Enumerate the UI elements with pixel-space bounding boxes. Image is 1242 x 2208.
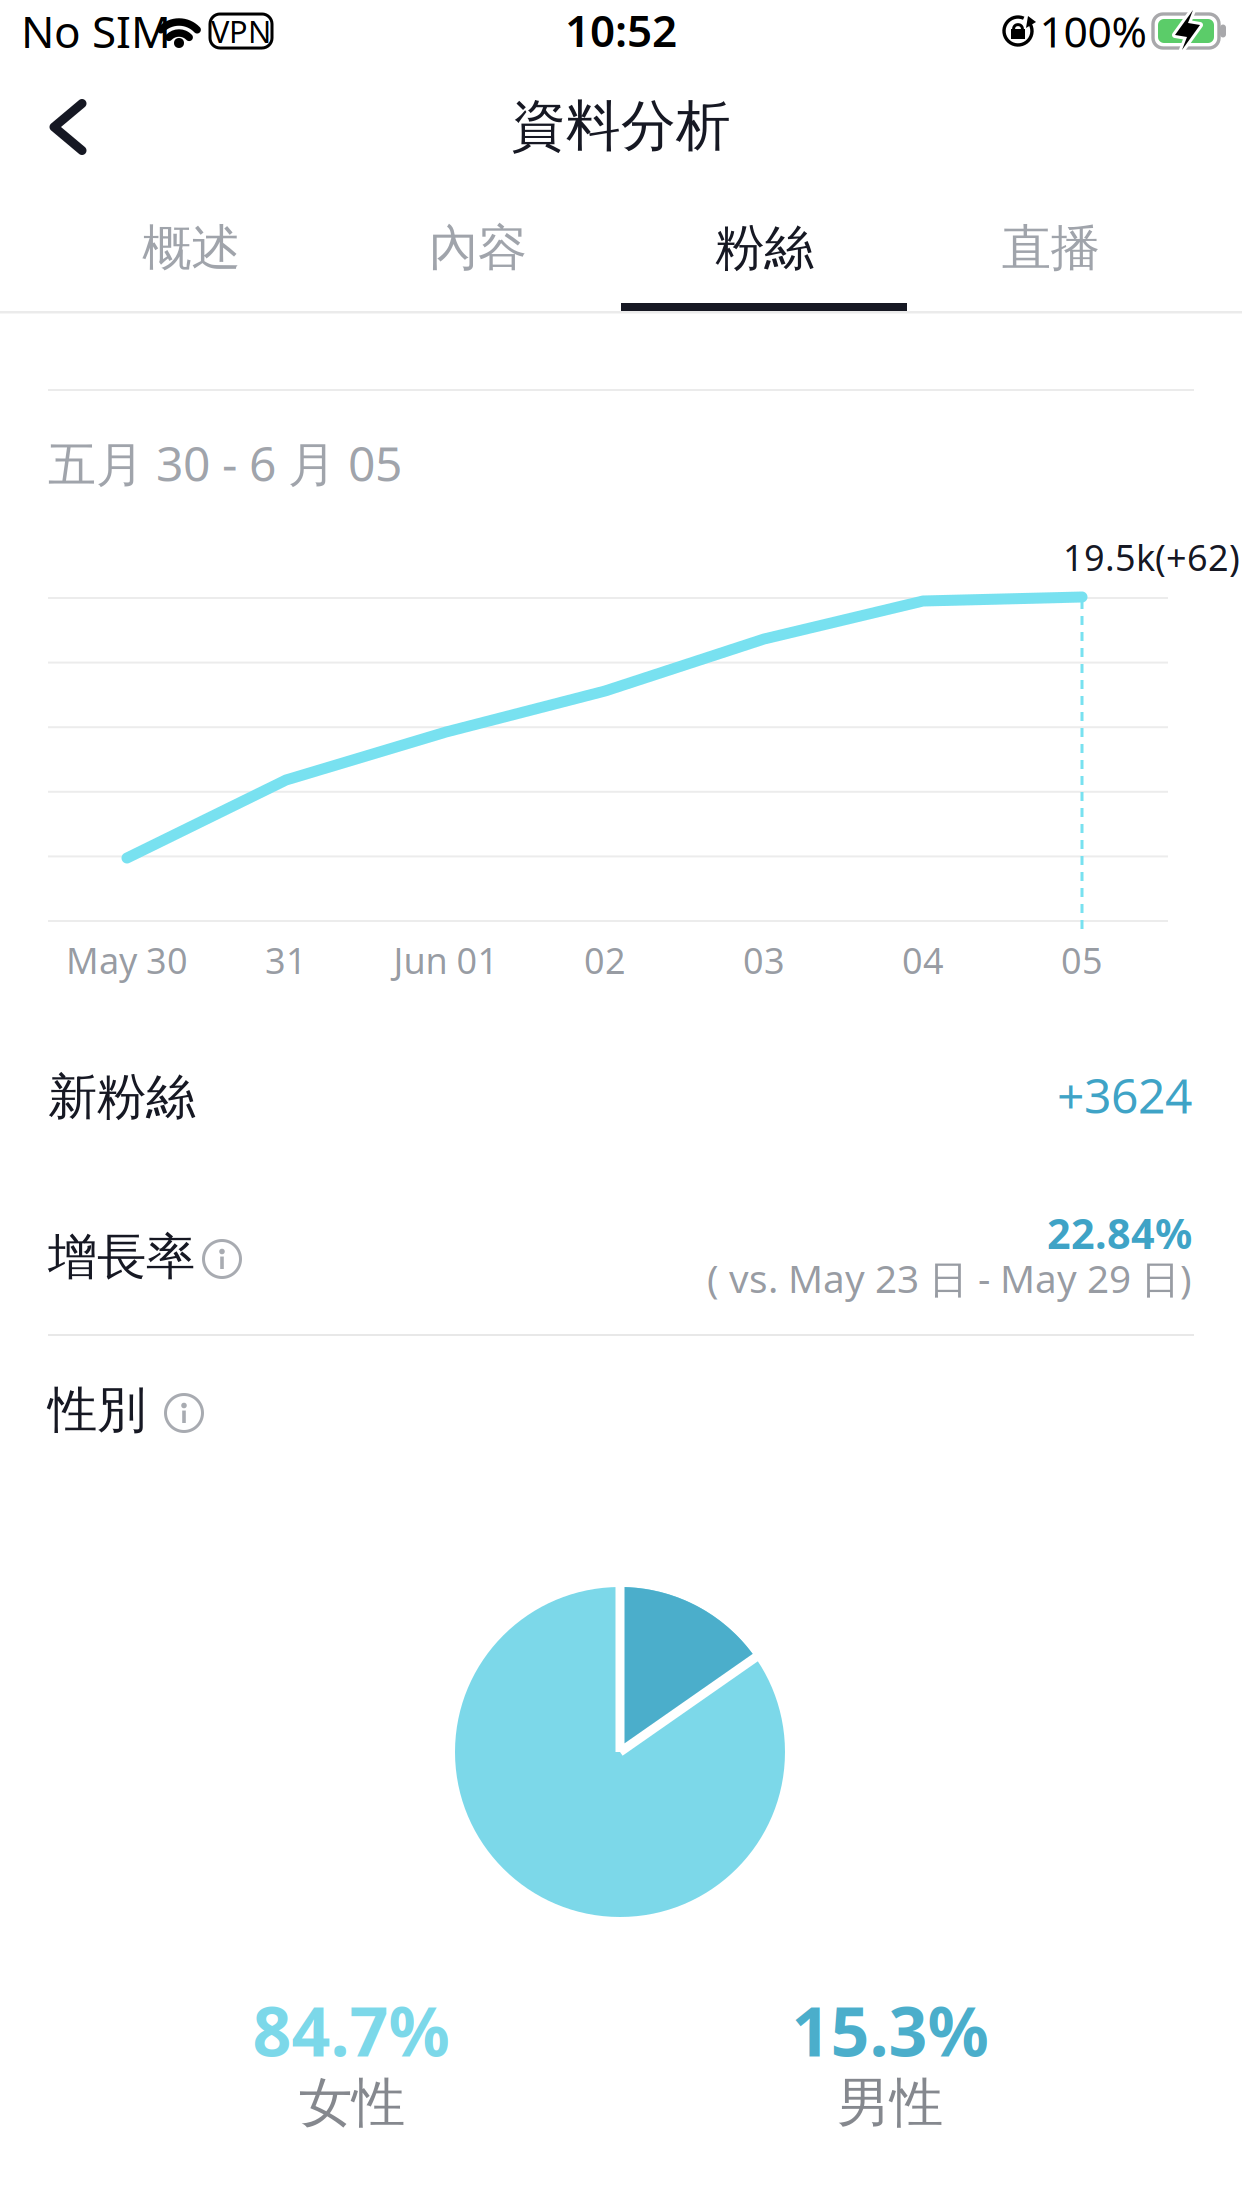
staticText: 女性: [299, 2070, 405, 2136]
staticText: No SIM: [21, 2, 171, 60]
button[interactable]: About gender: [162, 1391, 206, 1435]
staticText: 31: [265, 936, 307, 984]
button[interactable]: 粉絲: [621, 193, 907, 303]
staticText: 直播: [1002, 218, 1100, 278]
button[interactable]: 概述: [48, 193, 334, 303]
staticText: 五月 30 - 6 月 05: [48, 431, 402, 495]
button[interactable]: 內容: [335, 193, 621, 303]
staticText: 15.3%: [791, 1985, 988, 2075]
staticText: 22.84%: [1047, 1206, 1192, 1260]
staticText: 新粉絲: [48, 1067, 195, 1127]
staticText: 資料分析: [511, 92, 731, 159]
staticText: 100%: [1039, 3, 1146, 59]
staticText: ( vs. May 23 日 - May 29 日): [707, 1252, 1192, 1304]
staticText: 10:52: [565, 1, 677, 59]
staticText: 03: [743, 936, 785, 984]
button[interactable]: About growth rate: [200, 1237, 244, 1281]
staticText: 內容: [429, 218, 527, 278]
staticText: 19.5k(+62): [1063, 533, 1240, 581]
button[interactable]: 直播: [908, 193, 1194, 303]
staticText: Jun 01: [393, 936, 498, 984]
button[interactable]: Back: [36, 98, 100, 155]
staticText: VPN: [211, 11, 271, 51]
staticText: 02: [584, 936, 626, 984]
staticText: +3624: [1057, 1063, 1192, 1127]
staticText: 性別: [48, 1380, 146, 1440]
staticText: 05: [1061, 936, 1103, 984]
staticText: 概述: [142, 218, 240, 278]
staticText: 增長率: [48, 1227, 195, 1287]
staticText: 男性: [837, 2070, 943, 2136]
staticText: 粉絲: [715, 218, 813, 278]
staticText: 84.7%: [252, 1985, 449, 2075]
staticText: 04: [902, 936, 944, 984]
staticText: May 30: [66, 936, 188, 984]
